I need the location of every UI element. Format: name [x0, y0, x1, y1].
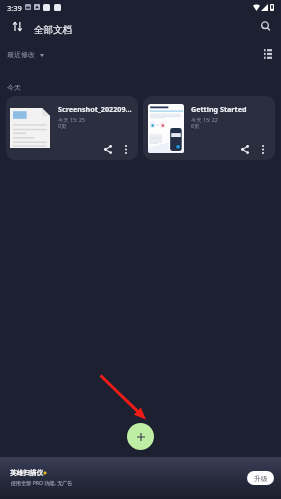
button[interactable]: 升级	[247, 471, 274, 485]
button[interactable]: Add new document	[127, 423, 154, 450]
staticText: 今天 15: 22	[191, 116, 218, 123]
button[interactable]: More options	[255, 141, 271, 157]
button[interactable]: More options	[118, 141, 134, 157]
button[interactable]: 英雄扫描仪	[0, 457, 281, 499]
button[interactable]: Share	[100, 141, 116, 157]
button[interactable]: Share	[237, 141, 253, 157]
staticText: 0页	[58, 122, 67, 129]
button[interactable]: Switch to list view	[257, 43, 279, 65]
staticText: 今天 15: 25	[58, 116, 85, 123]
staticText: 英雄扫描仪	[10, 469, 43, 477]
staticText: 6页	[191, 122, 200, 129]
button[interactable]: Search	[253, 13, 279, 39]
button[interactable]: Screenshot_202209…	[6, 96, 138, 160]
button[interactable]: Getting Started	[143, 96, 275, 160]
staticText: 升级	[254, 474, 268, 483]
button[interactable]: 最近修改	[5, 48, 46, 61]
staticText: 使用全部 PRO 功能, 无广告	[11, 480, 73, 487]
staticText: Getting Started	[191, 104, 247, 114]
staticText: 3:39	[7, 3, 22, 13]
button[interactable]: Sort	[5, 14, 29, 38]
staticText: 今天	[7, 83, 21, 92]
staticText: 全部文档	[34, 24, 72, 36]
staticText: 最近修改	[7, 50, 35, 59]
staticText: Screenshot_202209…	[58, 104, 132, 114]
